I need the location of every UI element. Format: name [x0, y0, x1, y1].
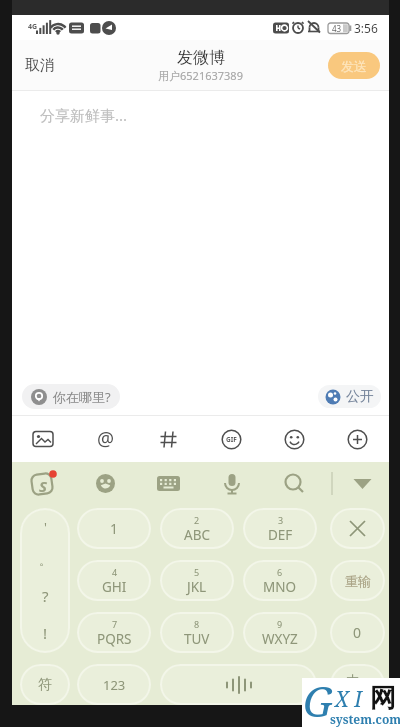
- staticText: 123: [103, 676, 126, 694]
- button[interactable]: [263, 416, 326, 462]
- staticText: GIF: [226, 435, 237, 444]
- button[interactable]: 中: [330, 664, 385, 705]
- staticText: 。: [39, 553, 51, 568]
- button[interactable]: @: [74, 416, 137, 462]
- button[interactable]: 3: [243, 508, 317, 549]
- button[interactable]: [74, 462, 137, 505]
- staticText: TUV: [184, 630, 210, 648]
- staticText: ': [44, 518, 47, 536]
- staticText: 2: [194, 514, 200, 526]
- button[interactable]: [326, 416, 389, 462]
- button[interactable]: [263, 462, 326, 505]
- button[interactable]: [326, 462, 389, 505]
- button[interactable]: 5: [160, 560, 234, 601]
- staticText: X I: [335, 685, 363, 714]
- button[interactable]: 4: [77, 560, 151, 601]
- staticText: 6: [277, 566, 283, 578]
- staticText: 1: [110, 519, 119, 538]
- button[interactable]: 2: [160, 508, 234, 549]
- staticText: 发送: [341, 58, 367, 74]
- staticText: GHI: [102, 578, 127, 596]
- staticText: ?: [42, 586, 49, 606]
- button[interactable]: 123: [77, 664, 151, 705]
- staticText: 分享新鲜事...: [40, 105, 128, 125]
- staticText: !: [43, 623, 48, 643]
- staticText: WXYZ: [262, 630, 298, 648]
- staticText: 用户6521637389: [158, 68, 243, 83]
- button[interactable]: 7: [77, 612, 151, 653]
- button[interactable]: [200, 462, 263, 505]
- staticText: 你在哪里?: [53, 388, 111, 406]
- staticText: ABC: [184, 526, 210, 544]
- staticText: JKL: [187, 578, 207, 596]
- button[interactable]: 8: [160, 612, 234, 653]
- staticText: DEF: [268, 526, 293, 544]
- staticText: 发微博: [177, 48, 225, 68]
- button[interactable]: S: [12, 462, 74, 505]
- button[interactable]: [137, 462, 200, 505]
- button[interactable]: 公开: [318, 385, 381, 408]
- staticText: system.com: [330, 711, 400, 727]
- staticText: 3:56: [354, 20, 378, 36]
- button[interactable]: 重输: [330, 560, 385, 601]
- staticText: 3: [278, 514, 284, 526]
- button[interactable]: 你在哪里?: [22, 384, 120, 409]
- button[interactable]: [12, 416, 74, 462]
- staticText: 中: [346, 673, 360, 691]
- button[interactable]: GIF: [200, 416, 263, 462]
- staticText: 英: [360, 685, 369, 696]
- staticText: MNO: [263, 578, 297, 596]
- staticText: 9: [277, 618, 283, 630]
- button[interactable]: 9: [243, 612, 317, 653]
- button[interactable]: 0: [330, 612, 385, 653]
- button[interactable]: ': [20, 508, 70, 653]
- button[interactable]: [160, 664, 317, 705]
- staticText: @: [97, 426, 115, 452]
- staticText: 网: [370, 682, 396, 715]
- button[interactable]: [137, 416, 200, 462]
- staticText: 4: [112, 566, 118, 578]
- button[interactable]: 符: [20, 664, 70, 705]
- staticText: 7: [112, 618, 118, 630]
- staticText: 8: [194, 618, 200, 630]
- staticText: 0: [353, 623, 362, 642]
- staticText: PQRS: [97, 630, 132, 648]
- staticText: S: [39, 476, 47, 496]
- button[interactable]: [330, 508, 385, 549]
- staticText: G: [303, 672, 333, 721]
- button[interactable]: 取消: [25, 56, 55, 75]
- staticText: 公开: [346, 388, 374, 406]
- button[interactable]: 发送: [328, 52, 380, 79]
- staticText: 43: [332, 23, 342, 34]
- staticText: 符: [38, 676, 52, 694]
- staticText: 重输: [345, 573, 371, 589]
- button[interactable]: 1: [77, 508, 151, 549]
- button[interactable]: 6: [243, 560, 317, 601]
- staticText: 5: [194, 566, 200, 578]
- staticText: 4G: [28, 22, 38, 32]
